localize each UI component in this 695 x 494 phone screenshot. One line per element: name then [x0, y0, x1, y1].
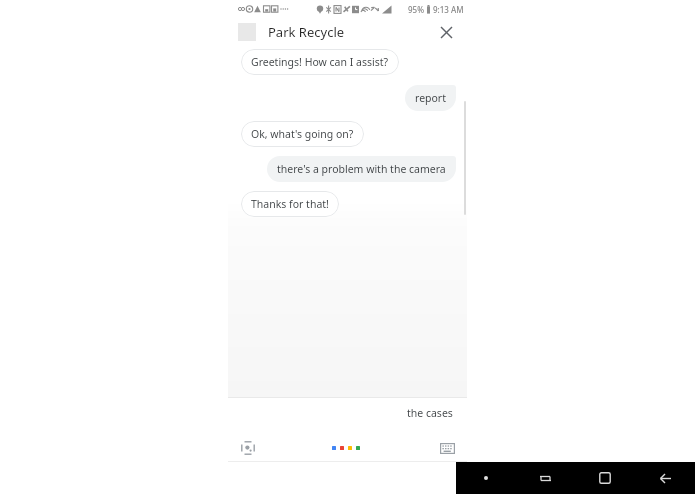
button[interactable]: Home [575, 462, 635, 494]
staticText: 9:13 AM [433, 4, 464, 15]
button[interactable]: Menu [456, 462, 515, 494]
staticText: there's a problem with the camera [277, 162, 446, 176]
button[interactable]: Greetings! How can I assist? [241, 49, 399, 75]
button[interactable]: Back [635, 462, 695, 494]
staticText: report [415, 91, 446, 105]
button[interactable]: Thanks for that! [241, 191, 339, 217]
button[interactable]: report [405, 85, 456, 111]
staticText: Ok, what's going on? [251, 127, 354, 141]
button[interactable]: Lens [236, 436, 260, 460]
staticText: Greetings! How can I assist? [251, 55, 389, 69]
button[interactable]: Recents [515, 462, 575, 494]
staticText: 95% [408, 4, 424, 15]
staticText: Park Recycle [268, 23, 345, 41]
button[interactable]: there's a problem with the camera [267, 156, 456, 182]
staticText: the cases [407, 406, 453, 420]
button[interactable]: Close [435, 21, 457, 43]
button[interactable]: Keyboard [435, 436, 459, 460]
staticText: Thanks for that! [251, 197, 329, 211]
button[interactable]: Ok, what's going on? [241, 121, 364, 147]
